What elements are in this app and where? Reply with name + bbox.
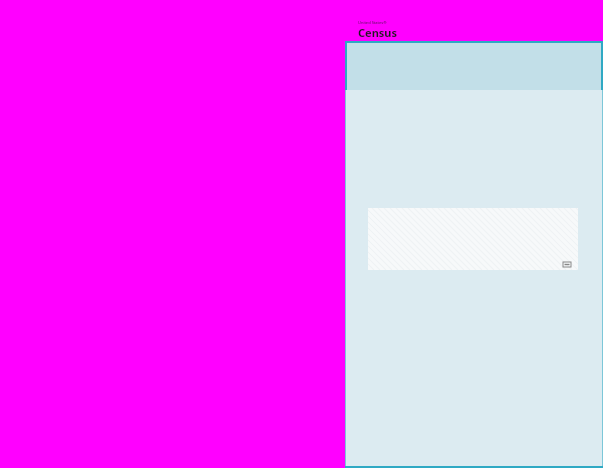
- button[interactable]: United States Census Bureau home: [358, 20, 397, 49]
- staticText: United States®: [358, 20, 387, 25]
- button[interactable]: Card options: [368, 208, 578, 270]
- staticText: Census: [358, 25, 397, 40]
- button[interactable]: Card options: [563, 262, 571, 267]
